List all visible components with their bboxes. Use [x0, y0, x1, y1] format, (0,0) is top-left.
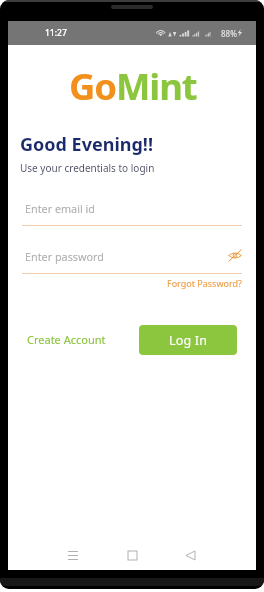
button[interactable]: Forgot Password?: [165, 275, 244, 291]
staticText: Good Evening!!: [20, 132, 154, 157]
button[interactable]: Create Account: [27, 332, 106, 347]
staticText: GoMint: [69, 61, 197, 111]
button[interactable]: Home: [117, 540, 147, 570]
button[interactable]: Recent apps: [58, 540, 88, 570]
staticText: Enter email id: [25, 201, 95, 216]
staticText: Enter password: [25, 249, 104, 264]
staticText: 88%: [221, 28, 237, 39]
button[interactable]: [22, 195, 242, 222]
button[interactable]: [22, 243, 242, 270]
button[interactable]: Show password: [226, 247, 243, 264]
staticText: Use your credentials to login: [20, 161, 155, 175]
button[interactable]: Back: [175, 540, 205, 570]
staticText: Log In: [169, 332, 208, 349]
button[interactable]: Log In: [139, 325, 237, 355]
staticText: 11:27: [45, 27, 67, 39]
